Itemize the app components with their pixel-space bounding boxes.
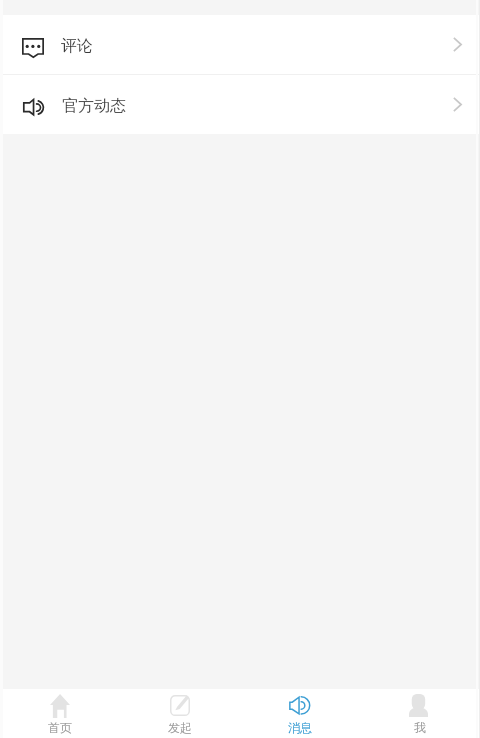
button[interactable]: 我 — [360, 689, 480, 738]
staticText: 我 — [414, 720, 426, 735]
staticText: 首页 — [48, 720, 72, 735]
button[interactable]: 发起 — [120, 689, 240, 738]
button[interactable]: 评论 — [0, 15, 480, 74]
button[interactable]: 首页 — [0, 689, 120, 738]
staticText: 官方动态 — [62, 96, 126, 116]
staticText: 评论 — [61, 36, 93, 56]
button[interactable]: 官方动态 — [0, 75, 480, 134]
button[interactable]: 消息 — [240, 689, 360, 738]
staticText: 消息 — [288, 720, 312, 735]
staticText: 发起 — [168, 720, 192, 735]
